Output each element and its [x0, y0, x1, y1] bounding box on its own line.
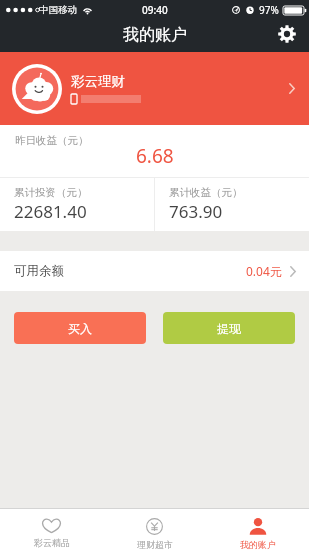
staticText: 提现 — [217, 321, 241, 336]
staticText: 中国移动 — [39, 4, 77, 16]
staticText: 我的账户 — [123, 25, 187, 45]
button[interactable]: 彩云精品 — [0, 509, 103, 550]
staticText: 彩云理财 — [71, 73, 125, 90]
staticText: 可用余额 — [14, 263, 64, 279]
button[interactable]: 理财超市 — [103, 509, 206, 550]
staticText: 6.68 — [136, 143, 174, 169]
staticText: 0.04元 — [246, 263, 282, 279]
staticText: 我的账户 — [240, 539, 276, 550]
staticText: 理财超市 — [137, 539, 173, 550]
staticText: 763.90 — [169, 200, 223, 223]
button[interactable]: 彩云理财 — [0, 52, 309, 125]
button[interactable]: Settings — [274, 21, 300, 47]
staticText: 累计收益（元） — [169, 186, 243, 199]
staticText: 买入 — [68, 321, 92, 336]
staticText: 昨日收益（元） — [15, 134, 89, 147]
staticText: 09:40 — [142, 3, 168, 17]
staticText: 97% — [259, 3, 279, 17]
button[interactable]: 提现 — [163, 312, 295, 344]
button[interactable]: 可用余额 — [0, 251, 309, 291]
button[interactable]: 买入 — [14, 312, 146, 344]
button[interactable]: 我的账户 — [206, 509, 309, 550]
staticText: 累计投资（元） — [14, 186, 88, 199]
staticText: 22681.40 — [14, 200, 87, 223]
staticText: 彩云精品 — [34, 537, 70, 548]
